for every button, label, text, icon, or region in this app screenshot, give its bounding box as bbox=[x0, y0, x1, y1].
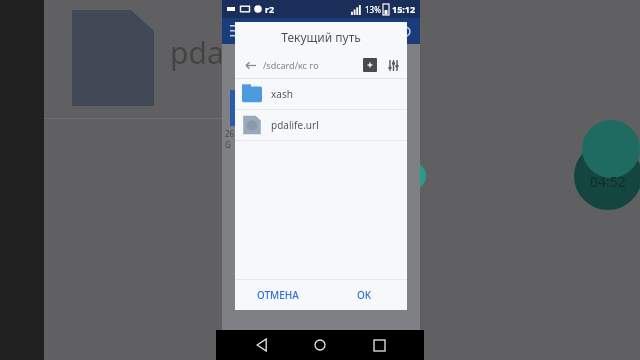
staticText: xash bbox=[271, 87, 293, 101]
button[interactable]: Home bbox=[307, 332, 333, 358]
staticText: /sdcard/кс го bbox=[263, 59, 319, 71]
staticText: ОТМЕНА bbox=[257, 288, 299, 302]
staticText: OK bbox=[357, 288, 372, 302]
staticText: 13% bbox=[365, 4, 381, 15]
button[interactable]: Sort bbox=[386, 58, 400, 72]
button[interactable]: ОТМЕНА bbox=[235, 280, 321, 310]
staticText: Текущий путь bbox=[281, 29, 361, 45]
staticText: 04:52 bbox=[590, 172, 626, 191]
staticText: r2 bbox=[265, 3, 275, 15]
button[interactable]: Back bbox=[249, 332, 275, 358]
button[interactable]: Back bbox=[242, 57, 258, 73]
button[interactable]: pdalife.url bbox=[235, 110, 407, 140]
staticText: 26 G bbox=[225, 128, 235, 150]
staticText: 15:12 bbox=[392, 3, 416, 15]
staticText: pda bbox=[170, 32, 224, 73]
button[interactable]: OK bbox=[321, 280, 407, 310]
button[interactable]: xash bbox=[235, 79, 407, 109]
button[interactable]: Recents bbox=[366, 332, 392, 358]
staticText: pdalife.url bbox=[271, 118, 319, 132]
button[interactable]: New folder bbox=[363, 58, 377, 72]
